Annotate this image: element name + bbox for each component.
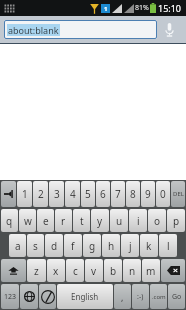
button[interactable]: Shift <box>1 259 26 282</box>
button[interactable]: 4 <box>65 181 80 207</box>
staticText: d <box>51 239 58 253</box>
staticText: z <box>34 264 39 278</box>
staticText: 15:10 <box>158 2 182 14</box>
button[interactable]: 2 <box>33 181 48 207</box>
button[interactable]: c <box>66 259 84 282</box>
staticText: w <box>24 214 32 228</box>
button[interactable]: e <box>37 209 54 232</box>
button[interactable]: , <box>114 284 131 309</box>
button[interactable]: n <box>123 259 141 282</box>
button[interactable]: p <box>167 209 185 232</box>
staticText: 3 <box>54 187 60 201</box>
staticText: h <box>108 239 115 253</box>
button[interactable]: 123 <box>1 284 19 309</box>
staticText: 81% <box>135 3 149 13</box>
button[interactable]: 0 <box>156 181 170 207</box>
button[interactable]: 5 <box>81 181 95 207</box>
button[interactable]: k <box>140 234 158 257</box>
button[interactable]: DEL <box>171 181 185 207</box>
staticText: , <box>121 291 124 303</box>
button[interactable]: .com <box>150 284 167 309</box>
staticText: u <box>116 214 123 228</box>
button[interactable]: m <box>142 259 160 282</box>
staticText: p <box>173 214 180 228</box>
button[interactable]: about:blank <box>4 20 157 39</box>
button[interactable]: t <box>73 209 90 232</box>
staticText: l <box>167 239 170 253</box>
button[interactable]: q <box>1 209 18 232</box>
staticText: 7 <box>115 187 121 201</box>
button[interactable]: f <box>64 234 82 257</box>
button[interactable]: o <box>148 209 166 232</box>
button[interactable]: 6 <box>96 181 110 207</box>
button[interactable]: Handwriting input <box>39 284 56 309</box>
button[interactable]: b <box>104 259 122 282</box>
staticText: m <box>146 264 156 278</box>
staticText: t <box>80 214 84 228</box>
button[interactable]: x <box>47 259 65 282</box>
staticText: y <box>97 214 103 228</box>
staticText: 2 <box>38 187 44 201</box>
button[interactable]: u <box>110 209 128 232</box>
button[interactable]: s <box>27 234 44 257</box>
staticText: f <box>71 239 75 253</box>
staticText: b <box>110 264 117 278</box>
staticText: j <box>129 239 132 253</box>
staticText: 8 <box>130 187 136 201</box>
button[interactable]: Change language <box>20 284 38 309</box>
staticText: 5 <box>85 187 91 201</box>
button[interactable]: l <box>159 234 177 257</box>
staticText: about:blank <box>8 24 59 36</box>
staticText: q <box>6 214 13 228</box>
staticText: x <box>53 264 59 278</box>
button[interactable]: g <box>83 234 101 257</box>
button[interactable]: 7 <box>111 181 125 207</box>
staticText: :-) <box>137 292 144 302</box>
button[interactable]: i <box>129 209 147 232</box>
button[interactable]: Voice search <box>157 16 182 43</box>
button[interactable]: j <box>121 234 139 257</box>
staticText: i <box>137 214 140 228</box>
staticText: g <box>89 239 96 253</box>
button[interactable]: w <box>19 209 36 232</box>
staticText: k <box>146 239 152 253</box>
button[interactable]: h <box>102 234 120 257</box>
button[interactable]: :-) <box>132 284 149 309</box>
button[interactable]: 8 <box>126 181 140 207</box>
staticText: 9 <box>145 187 151 201</box>
staticText: o <box>154 214 161 228</box>
staticText: English <box>71 291 99 302</box>
button[interactable]: z <box>27 259 46 282</box>
button[interactable]: a <box>9 234 26 257</box>
staticText: 1 <box>104 5 108 13</box>
button[interactable]: English <box>57 284 113 309</box>
staticText: 1 <box>22 187 28 201</box>
button[interactable]: 9 <box>141 181 155 207</box>
staticText: v <box>91 264 97 278</box>
button[interactable]: 1 <box>17 181 32 207</box>
staticText: e <box>43 214 49 228</box>
staticText: DEL <box>173 190 184 198</box>
button[interactable]: 3 <box>49 181 64 207</box>
button[interactable]: y <box>91 209 109 232</box>
button[interactable]: Backspace <box>161 259 185 282</box>
button[interactable]: r <box>55 209 72 232</box>
button[interactable]: v <box>85 259 103 282</box>
staticText: Go <box>172 292 182 302</box>
staticText: a <box>15 239 21 253</box>
staticText: n <box>129 264 136 278</box>
staticText: .com <box>152 293 166 301</box>
staticText: 123 <box>4 292 17 302</box>
staticText: s <box>33 239 38 253</box>
button[interactable]: d <box>45 234 63 257</box>
button[interactable]: Tab <box>1 181 16 207</box>
staticText: 4 <box>70 187 76 201</box>
staticText: c <box>73 264 78 278</box>
staticText: 6 <box>100 187 106 201</box>
button[interactable]: Go <box>168 284 185 309</box>
staticText: 0 <box>160 187 166 201</box>
staticText: r <box>61 214 66 228</box>
